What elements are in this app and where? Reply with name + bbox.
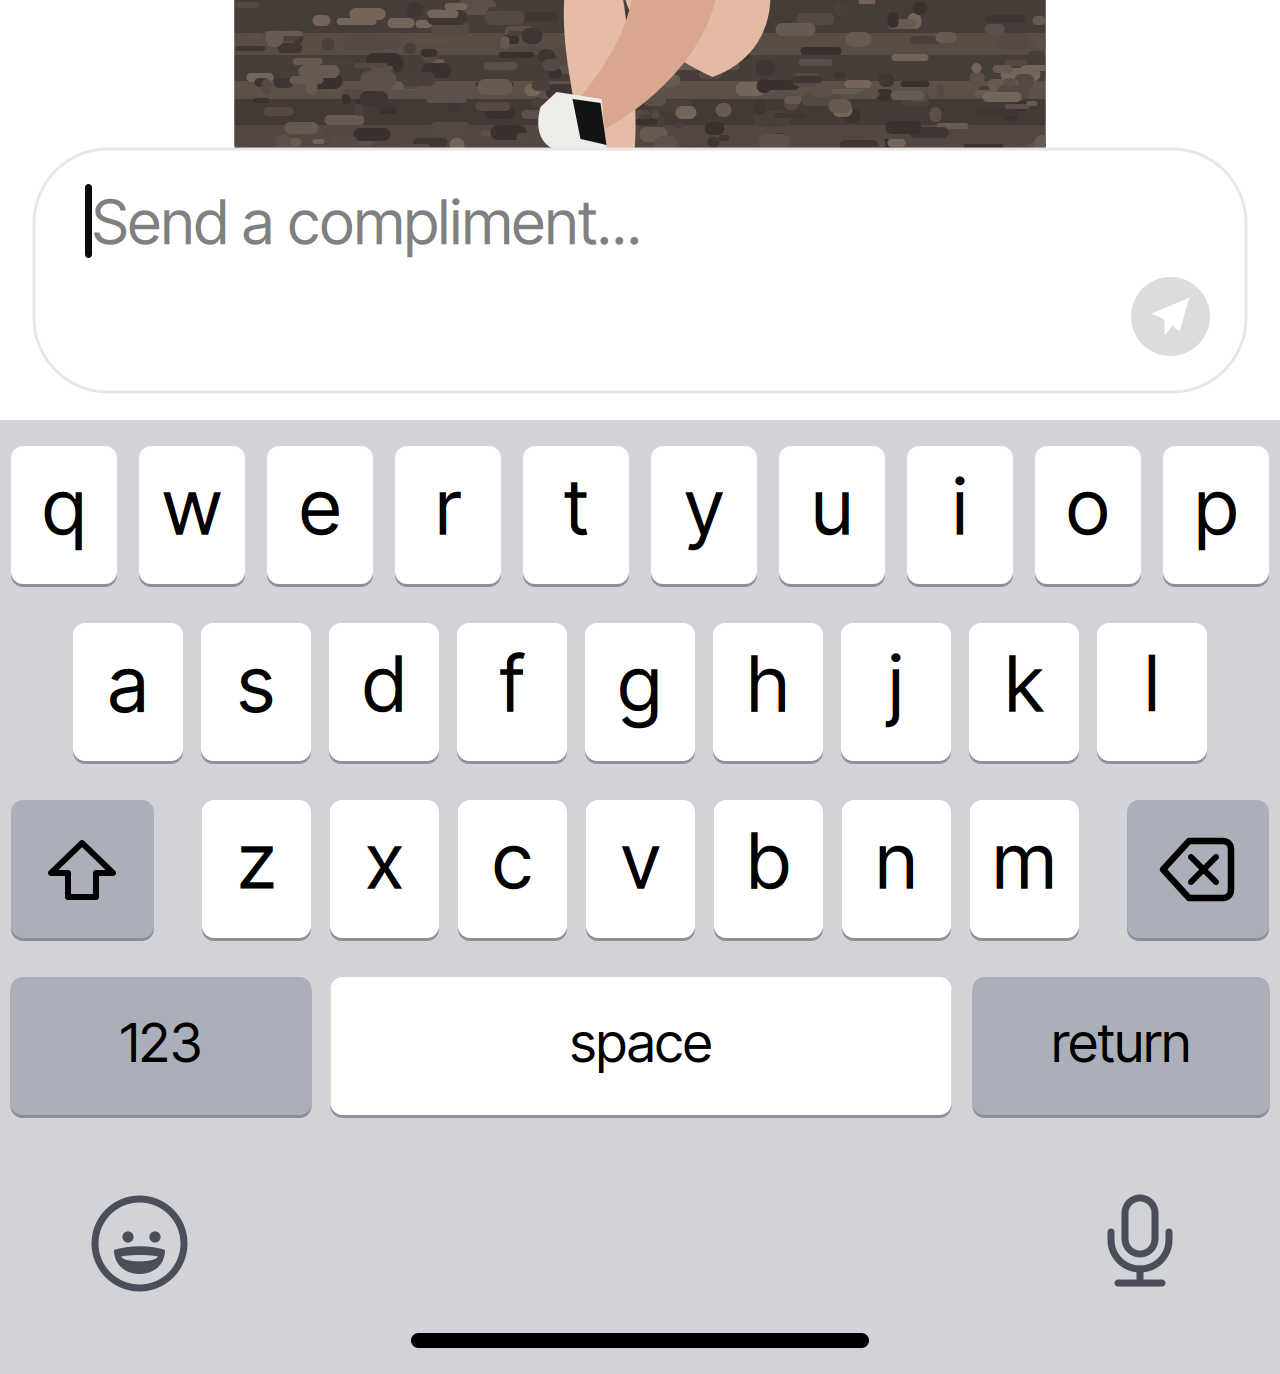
staticText: p [1194,459,1237,553]
staticText: s [237,636,274,730]
button[interactable]: y [651,446,757,584]
staticText: t [564,459,588,553]
staticText: x [365,813,403,907]
button[interactable]: Send [1131,277,1210,356]
staticText: r [435,459,460,553]
button[interactable]: j [841,623,951,761]
button[interactable]: t [523,446,629,584]
button[interactable]: u [779,446,885,584]
button[interactable]: x [330,800,439,938]
staticText: b [747,813,790,907]
button[interactable]: i [907,446,1013,584]
button[interactable]: z [202,800,311,938]
staticText: y [684,459,723,553]
button[interactable]: v [586,800,695,938]
button[interactable]: Photo [234,0,1045,147]
staticText: v [621,813,660,907]
staticText: n [875,813,917,907]
staticText: m [992,813,1056,907]
staticText: u [811,459,852,553]
button[interactable]: w [139,446,245,584]
staticText: j [888,636,903,730]
button[interactable]: Send a compliment... [85,171,1185,271]
button[interactable]: space [330,977,951,1115]
staticText: w [162,459,221,553]
staticText: f [500,636,524,730]
button[interactable]: return [972,977,1269,1115]
button[interactable]: m [970,800,1079,938]
button[interactable]: a [73,623,183,761]
staticText: l [1144,636,1159,730]
button[interactable]: Emoji keyboard [95,1195,184,1284]
button[interactable]: Dictation [1101,1193,1177,1286]
button[interactable]: p [1163,446,1269,584]
staticText: o [1066,459,1109,553]
button[interactable]: c [458,800,567,938]
button[interactable]: f [457,623,567,761]
staticText: c [492,813,532,907]
staticText: space [570,1009,712,1075]
staticText: q [42,459,85,553]
staticText: return [1051,1009,1190,1075]
button[interactable]: b [714,800,823,938]
button[interactable]: q [11,446,117,584]
staticText: g [618,636,662,730]
button[interactable]: Shift [11,800,154,938]
button[interactable]: g [585,623,695,761]
button[interactable]: n [842,800,951,938]
button[interactable]: d [329,623,439,761]
button[interactable]: 123 [10,977,311,1115]
button[interactable]: l [1097,623,1207,761]
staticText: e [299,459,340,553]
button[interactable]: e [267,446,373,584]
button[interactable]: o [1035,446,1141,584]
staticText: 123 [120,1009,202,1075]
staticText: i [952,459,967,553]
button[interactable]: Delete [1127,800,1269,938]
staticText: Send a compliment... [92,185,642,259]
button[interactable]: h [713,623,823,761]
button[interactable]: s [201,623,311,761]
staticText: z [237,813,275,907]
button[interactable]: r [395,446,501,584]
staticText: k [1005,636,1043,730]
staticText: d [362,636,405,730]
staticText: h [747,636,789,730]
staticText: a [108,636,148,730]
button[interactable]: k [969,623,1079,761]
